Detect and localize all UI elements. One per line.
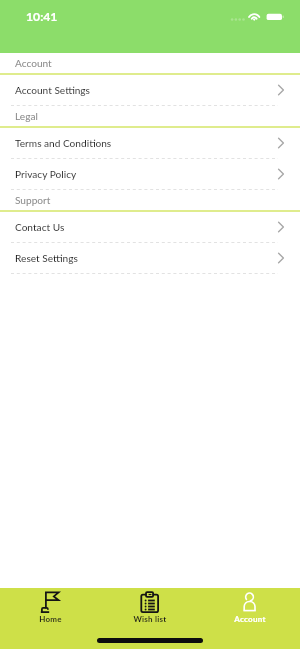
button[interactable]: Home bbox=[0, 588, 100, 624]
button[interactable]: Wish list bbox=[100, 588, 200, 624]
button[interactable]: Terms and Conditions bbox=[0, 128, 300, 159]
staticText: Wish list bbox=[133, 614, 167, 624]
button[interactable]: Privacy Policy bbox=[0, 159, 300, 190]
staticText: Account bbox=[15, 57, 52, 69]
staticText: Support bbox=[15, 194, 51, 206]
staticText: Account Settings bbox=[15, 84, 90, 96]
staticText: Legal bbox=[15, 110, 38, 122]
button[interactable]: Account Settings bbox=[0, 75, 300, 106]
staticText: Account bbox=[234, 614, 266, 624]
staticText: Privacy Policy bbox=[15, 168, 77, 180]
staticText: Terms and Conditions bbox=[15, 137, 112, 149]
staticText: 10:41 bbox=[26, 9, 58, 24]
button[interactable]: Contact Us bbox=[0, 212, 300, 243]
staticText: Home bbox=[39, 614, 62, 624]
staticText: Contact Us bbox=[15, 221, 65, 233]
staticText: Reset Settings bbox=[15, 252, 78, 264]
button[interactable]: Account bbox=[200, 588, 300, 624]
button[interactable]: Reset Settings bbox=[0, 243, 300, 274]
